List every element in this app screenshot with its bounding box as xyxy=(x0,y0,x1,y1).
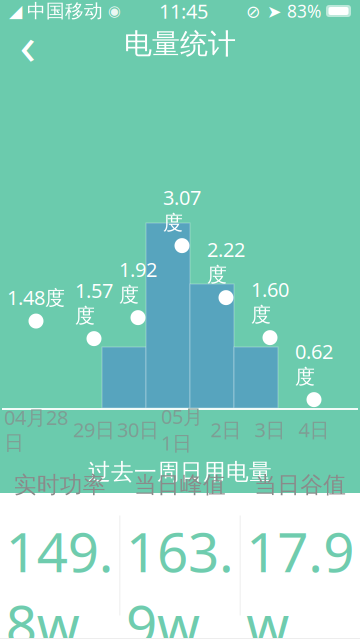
staticText: 2日 xyxy=(210,416,241,443)
staticText: 29日 xyxy=(73,416,115,443)
staticText: 2.22度 xyxy=(207,236,245,287)
staticText: 11:45 xyxy=(159,0,208,24)
button[interactable]: 返回 xyxy=(0,22,56,66)
staticText: 149.8w xyxy=(6,515,114,640)
staticText: ⊘ ➤ 83% xyxy=(246,0,321,22)
staticText: 1.60度 xyxy=(251,276,289,327)
staticText: 163.9w xyxy=(126,515,234,640)
staticText: 3日 xyxy=(254,416,285,443)
staticText: 电量统计 xyxy=(124,27,236,61)
staticText: ◢ xyxy=(9,1,22,21)
staticText: 30日 xyxy=(117,416,159,443)
staticText: ‹ xyxy=(19,9,36,79)
staticText: 过去一周日用电量 xyxy=(88,458,272,486)
staticText: 实时功率 xyxy=(14,471,106,499)
staticText: 4日 xyxy=(298,416,329,443)
staticText: 当日峰值 xyxy=(134,471,226,499)
staticText: 1.48度 xyxy=(7,284,65,311)
staticText: 04月28日 xyxy=(4,404,68,455)
staticText: 3.07度 xyxy=(163,184,201,235)
staticText: 05月1日 xyxy=(161,403,203,456)
staticText: ◉ xyxy=(108,3,121,19)
staticText: 中国移动 xyxy=(27,0,103,22)
staticText: 1.57度 xyxy=(75,277,113,328)
staticText: 1.92度 xyxy=(119,256,157,307)
staticText: 0.62度 xyxy=(295,338,333,389)
staticText: 当日谷值 xyxy=(254,471,346,499)
staticText: 17.9w xyxy=(246,515,354,640)
